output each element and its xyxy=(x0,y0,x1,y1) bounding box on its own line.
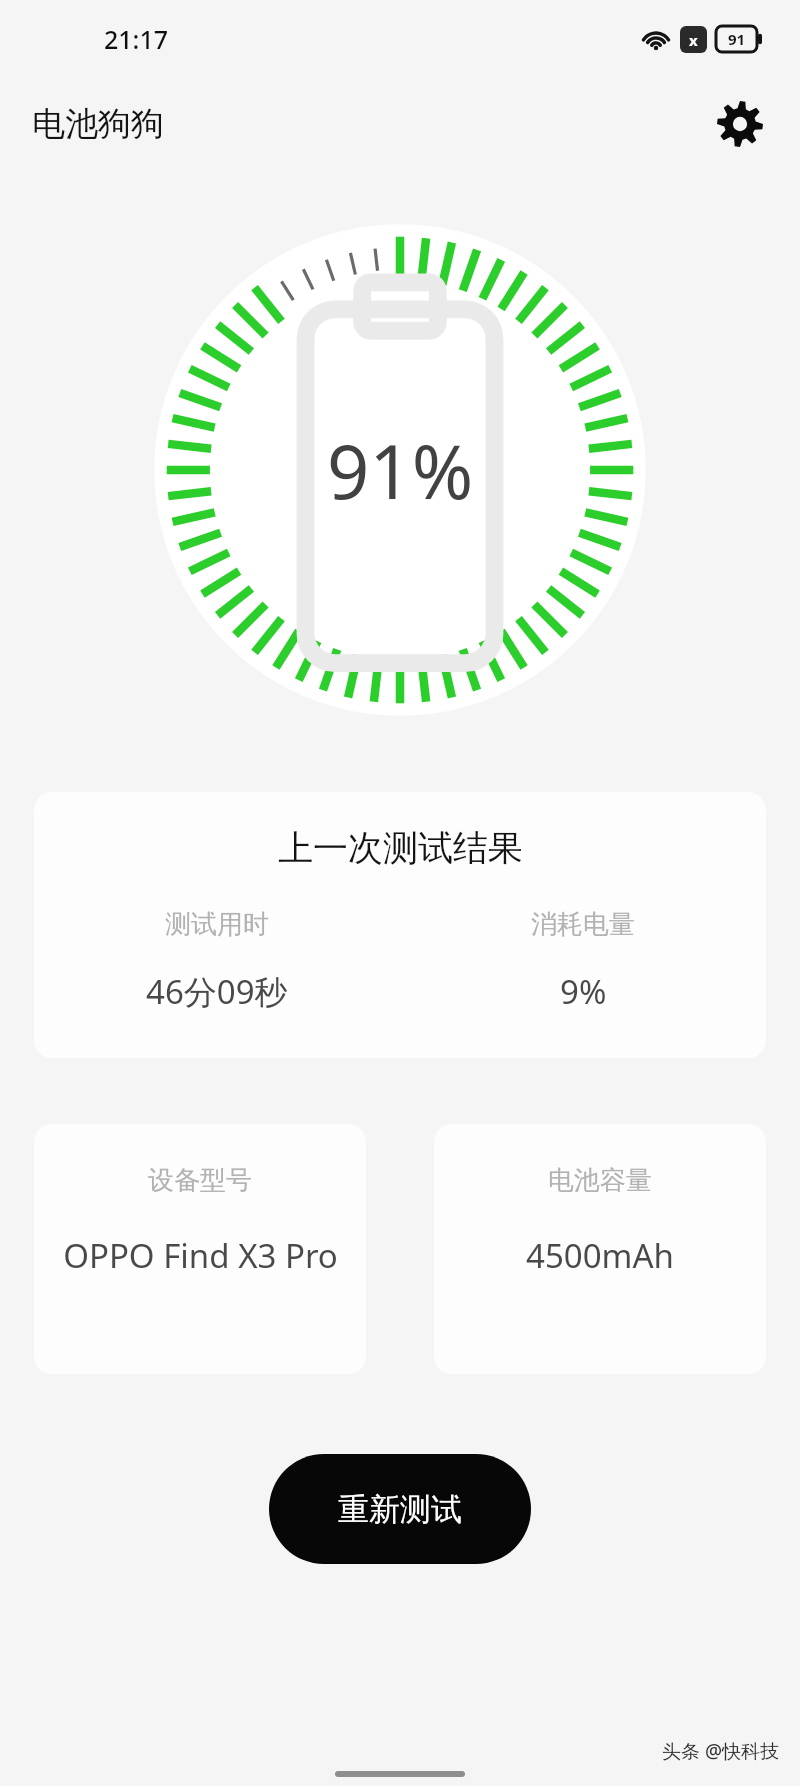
staticText: x xyxy=(689,30,698,50)
staticText: 消耗电量 xyxy=(531,908,635,941)
button[interactable]: 重新测试 xyxy=(269,1454,531,1564)
staticText: 91 xyxy=(728,29,746,49)
staticText: 测试用时 xyxy=(165,908,269,941)
staticText: 电池容量 xyxy=(548,1164,652,1197)
button[interactable]: 设备型号 xyxy=(34,1124,366,1374)
button[interactable]: 电池容量 xyxy=(434,1124,766,1374)
staticText: 电池狗狗 xyxy=(32,103,164,145)
staticText: 91% xyxy=(327,420,474,521)
staticText: 9% xyxy=(560,969,607,1014)
button[interactable]: 上一次测试结果 xyxy=(34,792,766,1058)
staticText: 4500mAh xyxy=(526,1233,674,1278)
staticText: 21:17 xyxy=(104,22,169,56)
button[interactable]: Settings xyxy=(704,88,776,160)
staticText: 上一次测试结果 xyxy=(278,826,523,870)
staticText: 重新测试 xyxy=(338,1490,462,1529)
staticText: 头条 @快科技 xyxy=(662,1738,780,1764)
staticText: 46分09秒 xyxy=(146,969,288,1014)
staticText: OPPO Find X3 Pro xyxy=(63,1233,338,1278)
staticText: 设备型号 xyxy=(148,1164,252,1197)
